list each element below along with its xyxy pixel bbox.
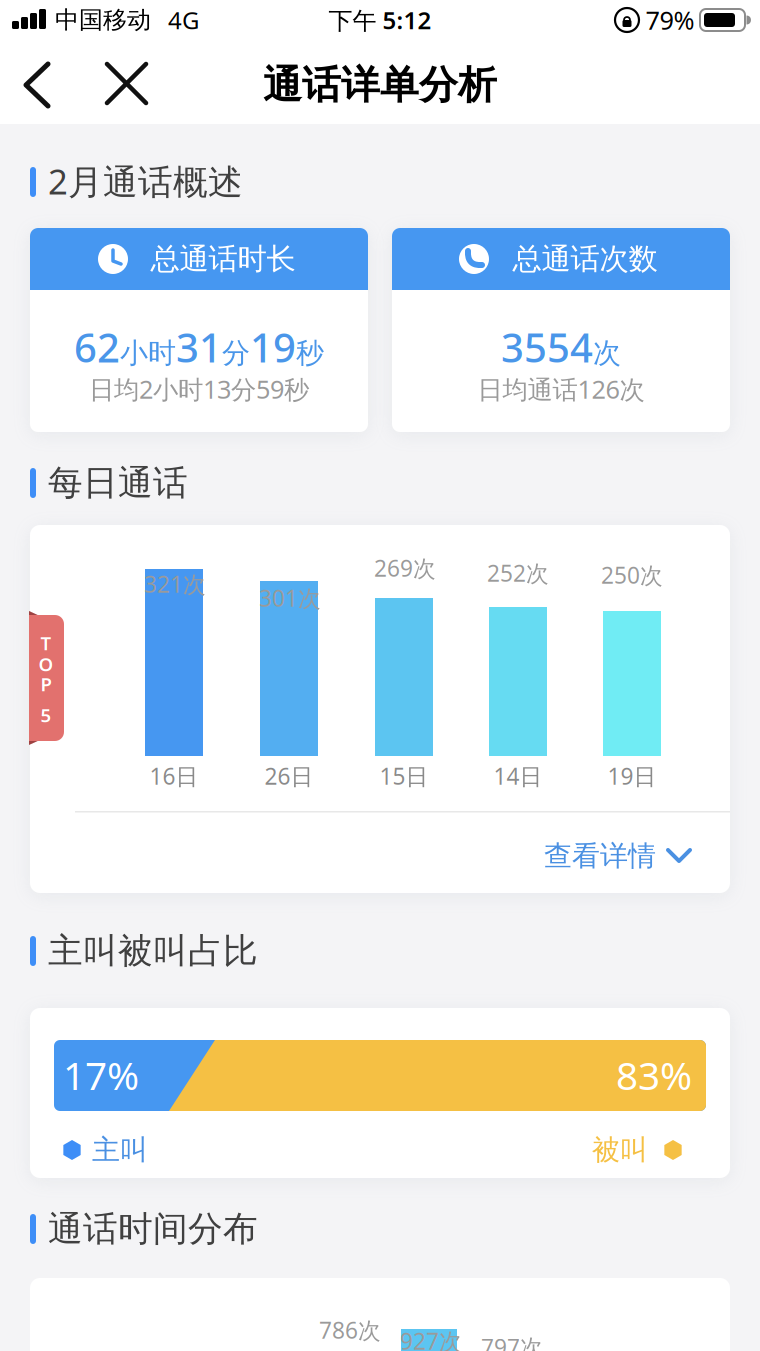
staticText: 15日	[379, 761, 428, 791]
staticText: 每日通话	[48, 462, 188, 504]
staticText: 中国移动	[55, 5, 151, 35]
staticText: 次	[593, 336, 621, 370]
staticText: 786次	[319, 1315, 381, 1345]
staticText: 2月通话概述	[48, 158, 243, 204]
staticText: 62	[74, 320, 120, 373]
staticText: O	[38, 652, 53, 676]
staticText: 小时	[120, 336, 176, 370]
staticText: 通话详单分析	[263, 61, 497, 109]
staticText: 总通话次数	[512, 241, 657, 277]
staticText: 3554	[501, 320, 593, 373]
staticText: 主叫	[92, 1133, 148, 1167]
staticText: 927次	[400, 1326, 462, 1351]
staticText: 日均通话126次	[477, 372, 644, 406]
staticText: 797次	[481, 1332, 543, 1351]
staticText: 31	[176, 320, 222, 373]
staticText: 16日	[149, 761, 198, 791]
staticText: 19日	[607, 761, 656, 791]
staticText: 总通话时长	[150, 241, 295, 277]
button[interactable]: Close	[104, 60, 150, 108]
staticText: 269次	[374, 553, 436, 583]
staticText: 14日	[493, 761, 542, 791]
staticText: 主叫被叫占比	[48, 930, 258, 972]
staticText: 252次	[487, 558, 549, 588]
staticText: 321次	[144, 569, 206, 599]
staticText: 26日	[264, 761, 313, 791]
staticText: 下午 5:12	[328, 4, 431, 36]
staticText: 79%	[645, 3, 694, 37]
staticText: 通话时间分布	[48, 1208, 258, 1250]
staticText: 日均2小时13分59秒	[89, 372, 309, 406]
staticText: T	[40, 631, 51, 655]
staticText: 分	[222, 336, 250, 370]
staticText: 5	[40, 703, 51, 727]
staticText: 83%	[616, 1049, 692, 1101]
staticText: 19	[250, 320, 296, 373]
staticText: 4G	[168, 4, 199, 36]
button[interactable]: Back	[18, 59, 62, 111]
staticText: 301次	[259, 583, 321, 613]
staticText: 秒	[296, 336, 324, 370]
staticText: P	[40, 672, 51, 696]
staticText: 查看详情	[544, 839, 656, 873]
staticText: 17%	[63, 1049, 139, 1101]
staticText: 被叫	[592, 1133, 648, 1167]
staticText: 250次	[601, 560, 663, 590]
button[interactable]: 查看详情	[544, 833, 692, 879]
